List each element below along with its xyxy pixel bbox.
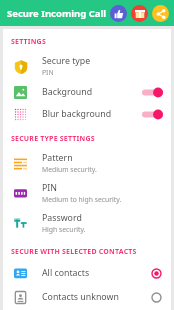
staticText: SECURE WITH SELECTED CONTACTS (11, 247, 137, 257)
button[interactable]: Secure type (3, 51, 171, 81)
staticText: Contacts unknown (42, 291, 119, 303)
button[interactable]: PIN (3, 178, 171, 208)
staticText: Pattern (42, 152, 73, 164)
staticText: Secure type (42, 55, 91, 67)
button[interactable]: Contacts unknown (3, 285, 171, 309)
button[interactable]: Like (110, 5, 127, 22)
staticText: SETTINGS (11, 37, 46, 47)
staticText: High security. (42, 225, 86, 234)
button[interactable]: Pattern (3, 148, 171, 178)
button[interactable]: Gift (131, 5, 148, 22)
staticText: Blur background (42, 108, 112, 120)
button[interactable]: Background (3, 81, 171, 103)
button[interactable]: All contacts (3, 261, 171, 285)
staticText: Password (42, 212, 82, 224)
staticText: Secure Incoming Call (7, 7, 107, 20)
button[interactable]: Share (152, 5, 169, 22)
button[interactable]: Password (3, 208, 171, 238)
staticText: PIN (42, 68, 54, 77)
staticText: All contacts (42, 267, 90, 279)
staticText: Medium security. (42, 165, 97, 174)
staticText: Medium to high security. (42, 195, 122, 204)
button[interactable]: Blur background (3, 103, 171, 125)
staticText: PIN (42, 182, 57, 194)
staticText: Background (42, 86, 93, 98)
staticText: SECURE TYPE SETTINGS (11, 134, 95, 144)
